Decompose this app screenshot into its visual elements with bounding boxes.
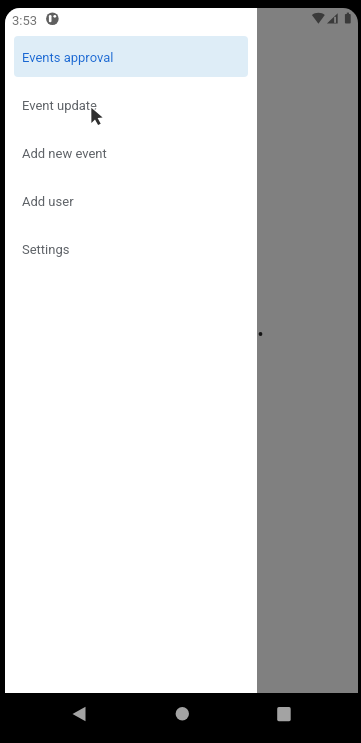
staticText: Add new event [22, 146, 107, 161]
button[interactable]: Add user [14, 180, 248, 221]
button[interactable]: Recent apps [254, 693, 314, 743]
staticText: 3:53 [12, 13, 38, 28]
staticText: Events approval [22, 50, 114, 65]
button[interactable]: Events approval [14, 36, 248, 77]
staticText: Settings [22, 242, 70, 257]
button[interactable]: Event update [14, 84, 248, 125]
button[interactable]: Home [152, 693, 212, 743]
button[interactable]: Settings [14, 228, 248, 269]
button[interactable]: Add new event [14, 132, 248, 173]
staticText: Event update [22, 98, 98, 113]
button[interactable]: Back [49, 693, 109, 743]
staticText: Add user [22, 194, 74, 209]
button[interactable]: Close navigation drawer [257, 8, 358, 693]
